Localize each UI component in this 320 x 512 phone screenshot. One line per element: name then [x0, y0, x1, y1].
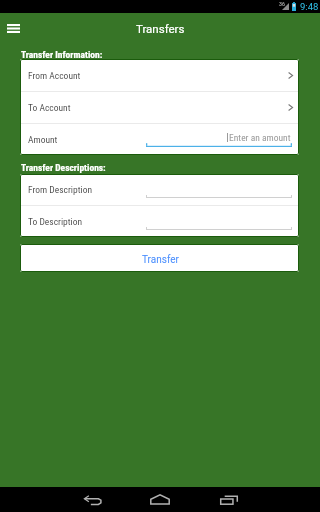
staticText: Transfer	[142, 254, 179, 266]
button[interactable]: Transfer	[20, 244, 299, 272]
button[interactable]: From Account	[20, 59, 299, 91]
button[interactable]: Recent apps	[195, 487, 265, 512]
button[interactable]: To Account	[20, 91, 299, 123]
button[interactable]: To Description	[20, 205, 299, 237]
staticText: Amount	[28, 134, 58, 145]
staticText: From Account	[28, 70, 81, 81]
staticText: Transfers	[136, 22, 185, 35]
staticText: Enter an amount	[229, 132, 291, 143]
staticText: Transfer Information:	[21, 49, 103, 60]
staticText: 36	[279, 0, 285, 7]
button[interactable]: Back	[55, 487, 125, 512]
staticText: To Description	[28, 216, 83, 227]
staticText: 9:48	[300, 1, 319, 12]
staticText: From Description	[28, 184, 93, 195]
staticText: Transfer Descriptions:	[21, 162, 106, 173]
button[interactable]: Open navigation drawer	[1, 17, 25, 41]
staticText: To Account	[28, 102, 71, 113]
button[interactable]: From Description	[20, 174, 299, 205]
button[interactable]: Amount	[20, 123, 299, 155]
button[interactable]: Home	[125, 487, 195, 512]
